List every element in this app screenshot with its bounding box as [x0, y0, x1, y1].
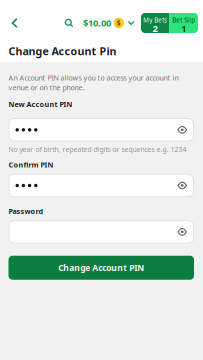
- button[interactable]: Change Account PIN: [8, 256, 194, 280]
- staticText: No year of birth, repeated digits or seq…: [8, 145, 186, 154]
- staticText: Password: [8, 206, 43, 216]
- button[interactable]: $10.00: [83, 13, 135, 33]
- staticText: 5: [117, 18, 121, 28]
- staticText: Change Account PIN: [58, 262, 144, 273]
- button[interactable]: Password: [8, 220, 194, 244]
- button[interactable]: Search: [61, 13, 77, 33]
- staticText: An Account PIN allows you to access your…: [8, 73, 178, 92]
- button[interactable]: Confirm PIN: [8, 174, 194, 197]
- staticText: 1: [181, 22, 186, 35]
- button[interactable]: New Account PIN: [8, 118, 194, 142]
- staticText: My Bets: [143, 16, 167, 24]
- staticText: New Account PIN: [8, 99, 72, 109]
- staticText: 2: [153, 22, 158, 35]
- button[interactable]: Back: [5, 13, 25, 33]
- button[interactable]: My Bets: [141, 13, 169, 33]
- staticText: Bet Slip: [172, 16, 195, 24]
- staticText: Change Account Pin: [8, 44, 116, 58]
- staticText: Confirm PIN: [8, 160, 53, 170]
- staticText: $10.00: [83, 17, 111, 29]
- button[interactable]: Bet Slip: [169, 13, 198, 33]
